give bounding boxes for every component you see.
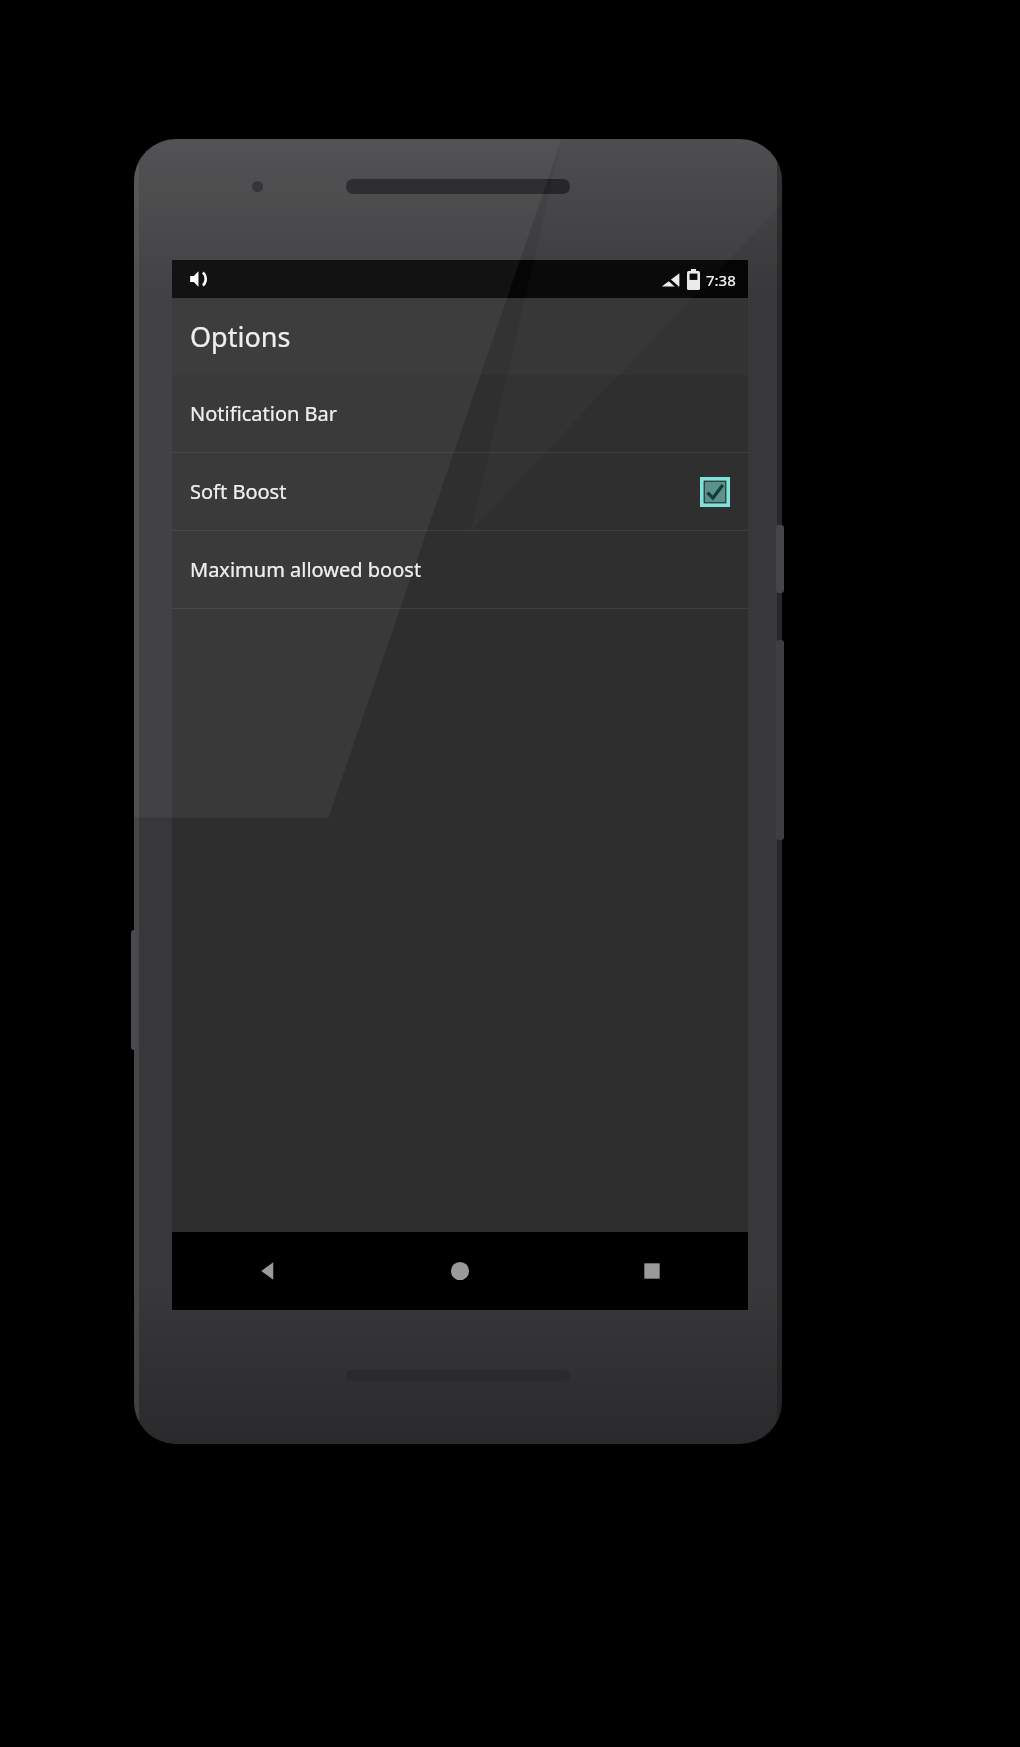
button[interactable]: Home (364, 1232, 556, 1310)
button[interactable]: Recent apps (556, 1232, 748, 1310)
staticText: Soft Boost (190, 478, 700, 505)
button[interactable]: Soft Boost (172, 453, 748, 530)
button[interactable]: Back (172, 1232, 364, 1310)
button[interactable]: Notification Bar (172, 375, 748, 452)
staticText: Notification Bar (190, 400, 730, 427)
button[interactable]: Options (172, 298, 748, 375)
button[interactable]: Maximum allowed boost (172, 531, 748, 608)
staticText: Maximum allowed boost (190, 556, 730, 583)
staticText: Options (190, 318, 291, 355)
other: Volume (186, 266, 212, 292)
button[interactable]: Soft Boost toggle (700, 477, 730, 507)
staticText: 7:38 (706, 270, 736, 290)
